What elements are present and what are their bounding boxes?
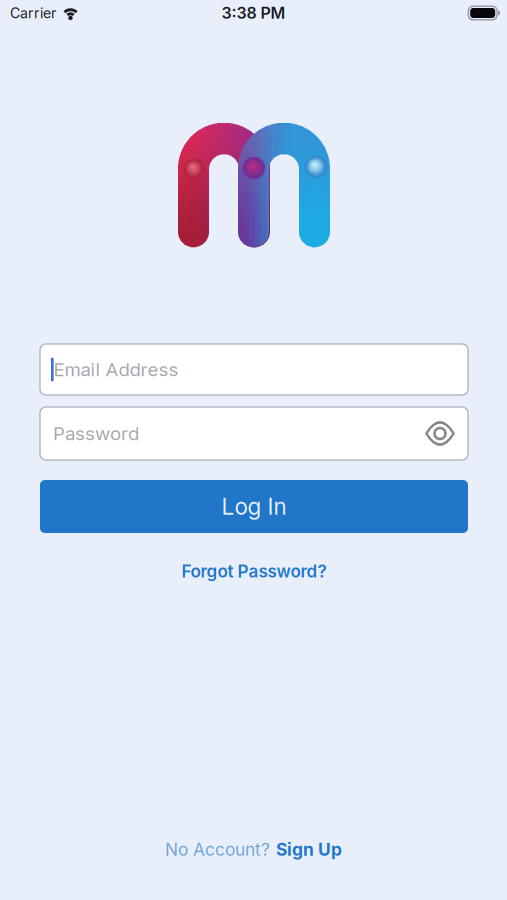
button[interactable]: Log In xyxy=(40,480,468,533)
staticText: Forgot Password? xyxy=(181,561,326,582)
button[interactable]: Password xyxy=(40,407,468,460)
staticText: Carrier xyxy=(10,4,56,21)
staticText: Email Address xyxy=(54,358,179,381)
button[interactable]: Forgot Password? xyxy=(40,558,468,585)
staticText: Log In xyxy=(221,493,286,520)
staticText: Password xyxy=(53,422,139,445)
button[interactable]: Email Address xyxy=(40,344,468,395)
button[interactable]: No Account? xyxy=(0,836,507,863)
staticText: Sign Up xyxy=(276,839,342,860)
staticText: 3:38 PM xyxy=(221,3,285,23)
staticText: No Account? xyxy=(165,839,270,860)
